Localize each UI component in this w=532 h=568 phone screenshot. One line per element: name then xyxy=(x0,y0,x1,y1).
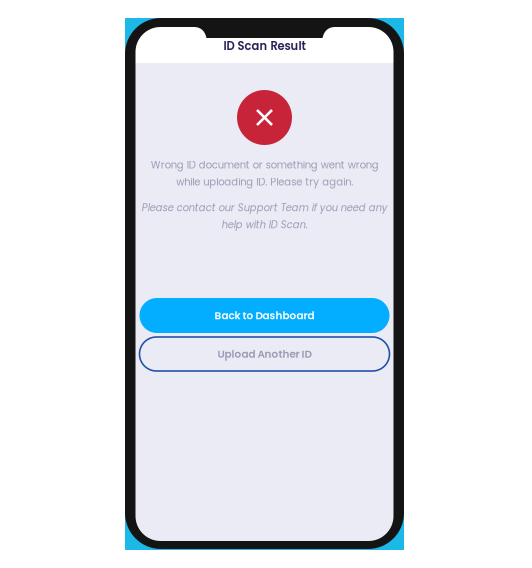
button[interactable]: Back to Dashboard xyxy=(139,298,389,333)
staticText: Back to Dashboard xyxy=(214,308,314,323)
staticText: ID Scan Result xyxy=(223,38,305,54)
staticText: Wrong ID document or something went wron… xyxy=(150,158,378,189)
staticText: Upload Another ID xyxy=(217,347,311,361)
button[interactable]: Upload Another ID xyxy=(139,337,389,371)
staticText: Please contact our Support Team if you n… xyxy=(141,201,387,232)
